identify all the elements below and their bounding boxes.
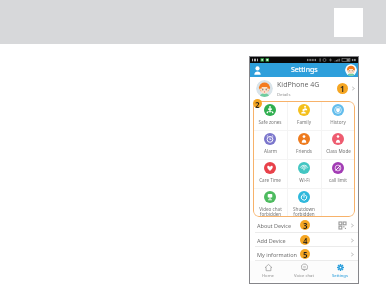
staticText: 5 xyxy=(303,249,308,259)
staticText: 1 xyxy=(340,83,345,94)
staticText: Friends xyxy=(296,148,312,154)
button[interactable]: Account xyxy=(345,64,357,76)
button[interactable]: Family xyxy=(287,101,321,130)
button[interactable]: About Device xyxy=(250,217,358,233)
button[interactable]: KidPhone 4G xyxy=(250,77,358,100)
staticText: Voice chat xyxy=(294,273,314,279)
staticText: About Device xyxy=(257,222,292,229)
other: QR code xyxy=(339,222,346,229)
staticText: call limit xyxy=(329,177,347,183)
button[interactable]: Voice chat xyxy=(286,261,322,281)
staticText: 3 xyxy=(303,220,308,230)
button[interactable]: Safe zones xyxy=(253,101,287,130)
staticText: Care Time xyxy=(259,177,281,183)
button[interactable]: My information xyxy=(250,247,358,261)
staticText: Wi-Fi xyxy=(299,177,310,183)
staticText: KidPhone 4G xyxy=(277,80,320,90)
staticText: Settings xyxy=(291,65,318,75)
staticText: Video chat forbidden xyxy=(259,206,282,217)
staticText: 4 xyxy=(303,235,308,245)
button[interactable]: Shutdown forbidden xyxy=(287,188,321,217)
button[interactable]: Video chat forbidden xyxy=(253,188,287,217)
button[interactable]: History xyxy=(321,101,355,130)
staticText: Shutdown forbidden xyxy=(293,206,315,217)
button[interactable]: Wi-Fi xyxy=(287,159,321,188)
button[interactable]: Home xyxy=(250,261,286,281)
staticText: Add Device xyxy=(257,237,286,244)
staticText: Class Mode xyxy=(326,148,351,154)
button[interactable]: call limit xyxy=(321,159,355,188)
staticText: Family xyxy=(297,119,311,125)
staticText: My information xyxy=(257,251,297,258)
button[interactable]: Alarm xyxy=(253,130,287,159)
staticText: Details xyxy=(277,92,291,98)
staticText: Home xyxy=(262,273,274,279)
button[interactable]: Add Device xyxy=(250,233,358,247)
staticText: Safe zones xyxy=(258,119,282,125)
button[interactable]: Class Mode xyxy=(321,130,355,159)
button[interactable]: Settings xyxy=(322,261,358,281)
staticText: History xyxy=(330,119,346,125)
staticText: Settings xyxy=(332,273,348,279)
button[interactable]: Care Time xyxy=(253,159,287,188)
button[interactable]: Friends xyxy=(287,130,321,159)
staticText: 2 xyxy=(255,99,260,108)
staticText: Alarm xyxy=(264,148,277,154)
button[interactable]: Profile xyxy=(254,66,261,75)
